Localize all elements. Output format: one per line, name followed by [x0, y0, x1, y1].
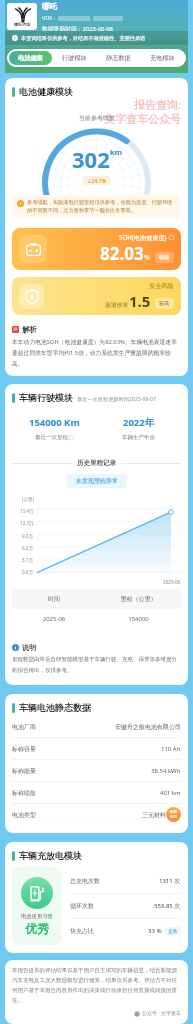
staticText: 2022年	[123, 416, 155, 429]
staticText: 2025-06	[163, 579, 181, 585]
staticText: 车辆行驶模块	[19, 392, 73, 403]
staticText: 电池厂商	[12, 723, 36, 731]
staticText: 哪吒汽车	[14, 22, 31, 27]
staticText: VIN：	[42, 14, 58, 22]
staticText: 里程数据由常岳自研智能模型基于车辆行驶、充电、保养等多维度分析拟合得出，仅供参考…	[12, 656, 181, 674]
staticText: 说明	[22, 643, 36, 652]
staticText: %	[144, 252, 151, 262]
staticText: 标称续航	[12, 789, 36, 797]
staticText: 衰退倍率	[105, 301, 129, 308]
staticText: 充电模块	[150, 54, 175, 62]
staticText: !	[14, 36, 16, 41]
staticText: 9.2万	[22, 533, 34, 539]
staticText: 总充电次数	[70, 877, 100, 885]
staticText: 静态数据	[106, 54, 131, 62]
staticText: 最近一次里程	[35, 434, 68, 441]
button[interactable]: 电池健康	[9, 51, 52, 65]
staticText: 15.4万	[20, 508, 34, 514]
staticText: 历史里程记录	[77, 459, 116, 467]
staticText: ↓24.7%	[87, 177, 106, 184]
staticText: 302	[72, 144, 110, 174]
staticText: (公里)	[22, 496, 34, 502]
button[interactable]: 充电模块	[140, 51, 184, 65]
staticText: 标称能量	[12, 767, 36, 775]
staticText: 解析	[22, 325, 37, 334]
staticText: 最近一次里程更新时间2025-06-07	[77, 395, 156, 402]
staticText: 3.1万	[22, 557, 34, 563]
staticText: 12.3万	[20, 520, 34, 526]
staticText: 里程（公里）	[96, 595, 181, 603]
staticText: 报告查询:	[12, 97, 181, 112]
staticText: 车辆充放电模块	[19, 850, 82, 861]
staticText: 154000	[96, 615, 181, 623]
button[interactable]: 行驶模块	[52, 51, 96, 65]
staticText: 较差	[159, 254, 170, 261]
staticText: 1311 次	[159, 877, 181, 885]
staticText: 车辆生产年份	[122, 434, 155, 441]
staticText: 优秀	[25, 921, 49, 936]
staticText: 本报告提供的评估结果仅基于用户自主填写的车辆信息，结合新能源汽车充电及工况大数据…	[12, 967, 181, 1004]
staticText: 2025-06	[12, 615, 96, 623]
staticText: !	[20, 201, 22, 207]
staticText: 参考续航，实际满电行驶里程仅供参考，会因为温度、行驶环境的不同而不同，北方春秋季…	[27, 199, 176, 214]
staticText: 本车动力电池SOH（电池健康度）为82.03%。车辆电池衰退速率要超过同类车型平…	[12, 338, 181, 368]
staticText: 401 km	[160, 789, 181, 797]
staticText: 安全风险	[149, 282, 174, 290]
staticText: 解释	[170, 810, 178, 815]
staticText: 循环次数	[70, 902, 94, 910]
button[interactable]: SOH(电池健康度)	[12, 228, 181, 270]
staticText: 行驶模块	[62, 54, 87, 62]
button[interactable]: 静态数据	[96, 51, 140, 65]
staticText: SOH(电池健康度)	[119, 233, 167, 241]
staticText: 38.54 kWh	[151, 767, 181, 775]
staticText: 33 %	[148, 927, 162, 935]
staticText: 154000 Km	[29, 416, 80, 429]
staticText: 1.5	[129, 291, 151, 311]
staticText: 6.2万	[22, 545, 34, 551]
staticText: 未发现里程异常	[76, 477, 118, 485]
button[interactable]: 安全风险	[12, 277, 181, 315]
staticText: 时间	[12, 595, 96, 603]
staticText: 110 Ah	[161, 745, 181, 753]
staticText: 电池健康	[18, 54, 43, 62]
staticText: 快充占比	[70, 927, 94, 935]
staticText: 0.6万	[22, 569, 34, 575]
staticText: 较高	[159, 300, 170, 307]
staticText: 哪吒	[42, 2, 57, 11]
staticText: 文字查车公众号	[12, 112, 181, 126]
staticText: 三元材料	[142, 811, 166, 819]
staticText: 电池类型	[12, 811, 36, 819]
staticText: 数据更新时间：2025-06-08	[42, 25, 113, 31]
staticText: 电池使用习惯	[21, 913, 53, 920]
staticText: km	[110, 147, 122, 157]
staticText: 本查询结果仅供参考，对结果不做准确性、完整性承诺	[21, 35, 146, 42]
staticText: 电池健康模块	[19, 86, 73, 97]
staticText: 说明	[170, 815, 178, 820]
staticText: 553.85 次	[154, 902, 181, 910]
staticText: 安徽舟之航电池有限公司	[115, 723, 181, 731]
staticText: 正常	[168, 928, 178, 934]
staticText: 标称容量	[12, 745, 36, 753]
staticText: 当前参考续航	[79, 114, 115, 122]
button[interactable]: 未发现里程异常	[67, 474, 127, 488]
staticText: 公众号 · 文字查车	[142, 1010, 181, 1017]
staticText: 82.03	[100, 242, 144, 265]
staticText: 车辆电池静态数据	[19, 702, 91, 713]
